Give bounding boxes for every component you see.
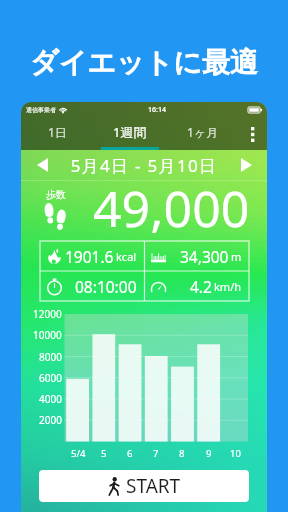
button[interactable]: START [39, 470, 249, 502]
button[interactable]: 1901.6 [46, 241, 137, 271]
staticText: 4000 [39, 392, 62, 406]
staticText: 7 [153, 447, 159, 460]
staticText: 6000 [39, 371, 62, 385]
staticText: 12000 [33, 307, 62, 321]
staticText: 4.2 [190, 276, 212, 297]
staticText: ダイエットに最適 [0, 45, 288, 80]
staticText: 6 [127, 447, 133, 460]
staticText: 08:10:00 [75, 276, 137, 297]
staticText: m [231, 249, 242, 264]
button[interactable]: Next week [233, 150, 259, 180]
button[interactable]: 1日 [21, 118, 93, 150]
button[interactable]: More options [239, 118, 267, 150]
staticText: 5 [101, 447, 107, 460]
button[interactable]: 1ヶ月 [166, 118, 239, 150]
staticText: kcal [116, 249, 137, 264]
button[interactable]: 1週間 [93, 118, 166, 150]
staticText: 8000 [39, 350, 62, 364]
staticText: 歩数 [46, 188, 66, 201]
staticText: km/h [214, 279, 242, 294]
staticText: 5/4 [71, 447, 86, 460]
staticText: 5月4日 - 5月10日 [55, 154, 233, 177]
staticText: 2000 [39, 413, 62, 427]
button[interactable]: 08:10:00 [46, 271, 137, 301]
staticText: 49,000 [93, 174, 250, 242]
button[interactable]: 4.2 [150, 271, 242, 301]
staticText: 1ヶ月 [187, 124, 219, 140]
staticText: 1日 [48, 124, 67, 140]
staticText: 8 [179, 447, 185, 460]
staticText: 1901.6 [65, 246, 114, 267]
staticText: 10000 [33, 328, 62, 342]
staticText: 34,300 [180, 246, 229, 267]
button[interactable]: Previous week [29, 150, 55, 180]
staticText: 通信事業者 [26, 106, 56, 114]
staticText: 9 [206, 447, 212, 460]
staticText: 16:14 [148, 105, 166, 115]
staticText: START [126, 473, 181, 499]
button[interactable]: 34,300 [150, 241, 242, 271]
staticText: 1週間 [113, 123, 147, 141]
staticText: 10 [230, 447, 241, 460]
